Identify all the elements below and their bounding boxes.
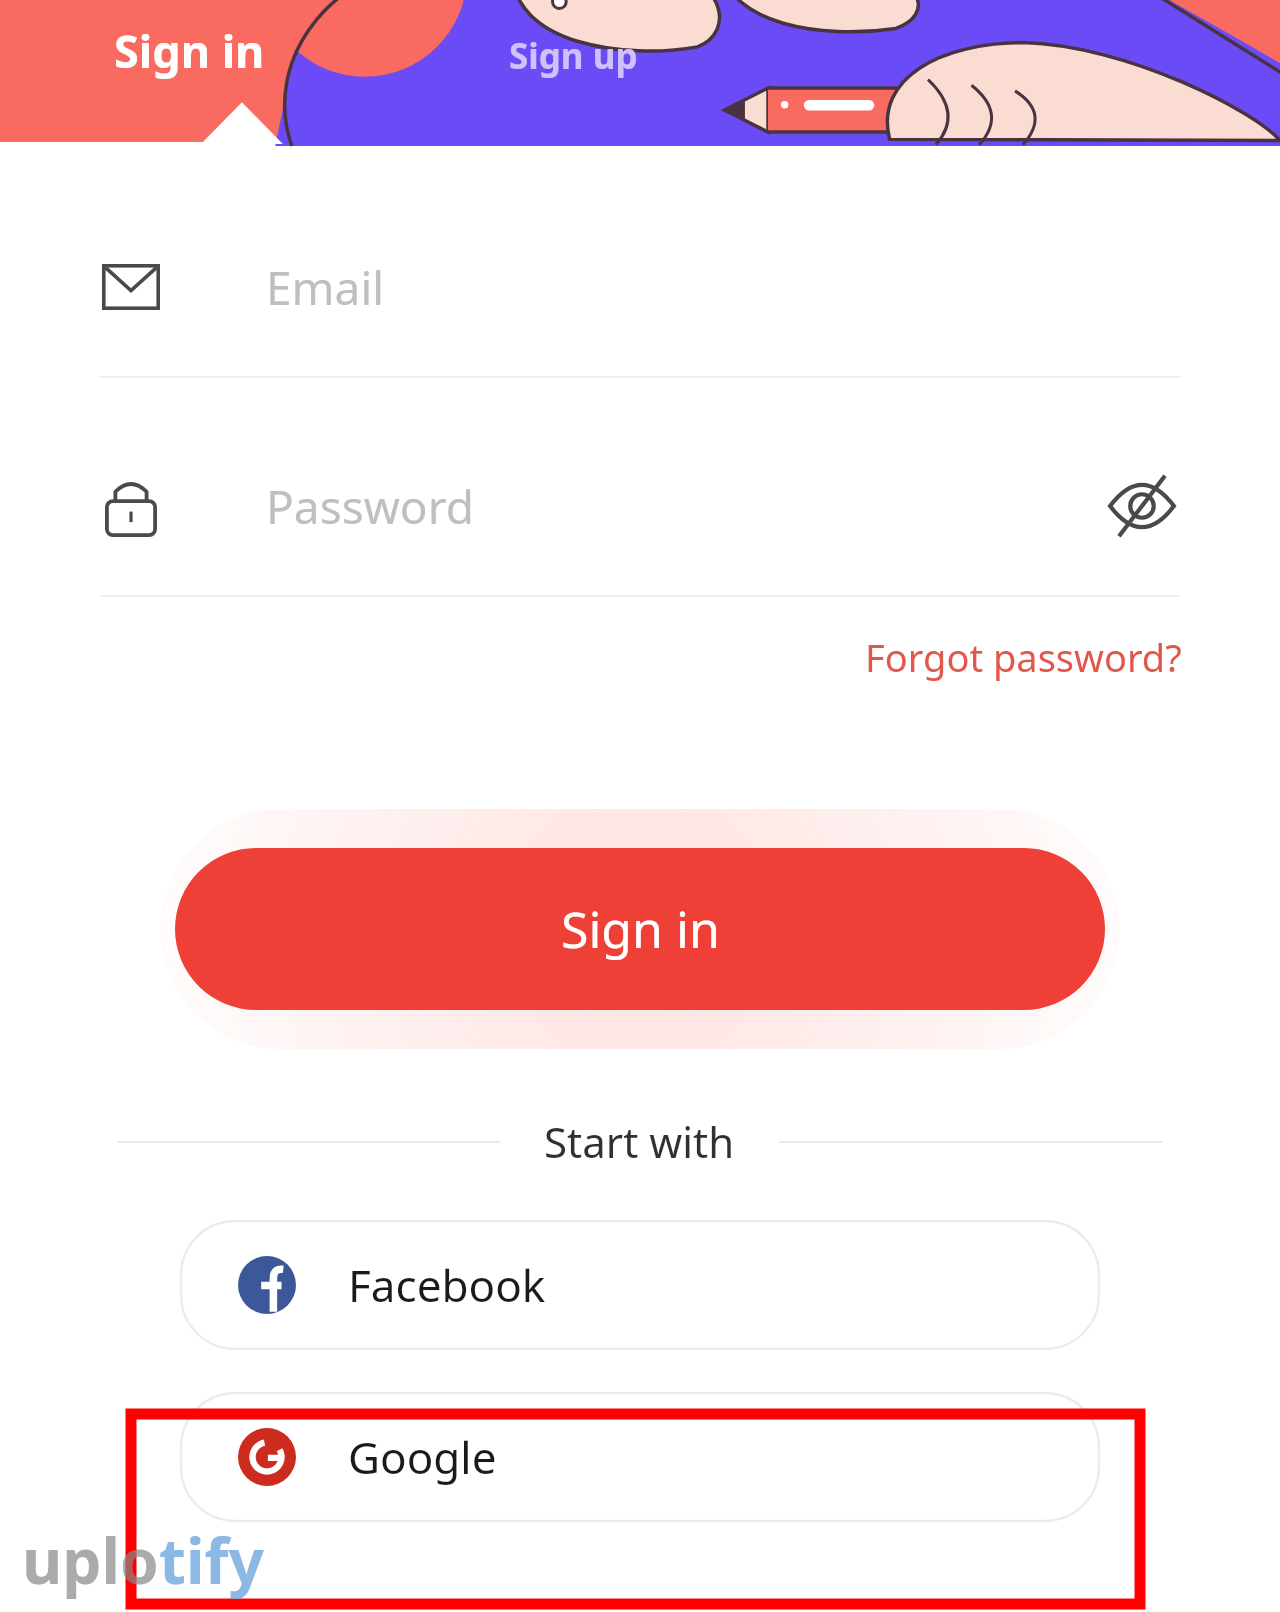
staticText: Forgot password?	[865, 631, 1182, 683]
staticText: Start with	[544, 1113, 735, 1170]
other: Sign in with Facebook	[238, 1256, 296, 1314]
other: Email	[102, 264, 160, 310]
staticText: uplo	[22, 1518, 159, 1602]
button[interactable]: Sign up	[505, 30, 642, 82]
staticText: tify	[159, 1518, 264, 1602]
button[interactable]: Email	[100, 244, 1180, 378]
staticText: Sign in	[561, 895, 720, 963]
other: Password	[105, 475, 157, 537]
staticText: Password	[266, 475, 475, 538]
button[interactable]: Forgot password?	[859, 625, 1188, 689]
other: Sign in with Google	[238, 1428, 296, 1486]
staticText: Email	[266, 256, 385, 319]
staticText: Sign up	[509, 32, 638, 80]
other: Show password	[1104, 478, 1180, 534]
button[interactable]: Password	[100, 463, 1180, 597]
staticText: Facebook	[348, 1255, 546, 1315]
button[interactable]: Sign in with Facebook	[180, 1220, 1100, 1350]
staticText: Sign in	[114, 20, 265, 81]
staticText: Google	[348, 1427, 497, 1487]
button[interactable]: Sign in	[110, 18, 269, 83]
button[interactable]: Sign in with Google	[180, 1392, 1100, 1522]
button[interactable]: Sign in	[175, 848, 1105, 1010]
